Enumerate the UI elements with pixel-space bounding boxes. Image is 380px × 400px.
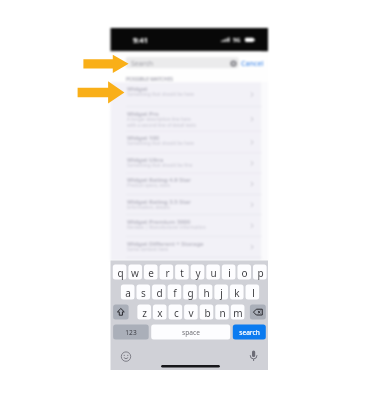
staticText: b bbox=[204, 306, 211, 320]
button[interactable]: a bbox=[121, 285, 135, 300]
staticText: m bbox=[233, 306, 243, 320]
staticText: w bbox=[131, 266, 139, 280]
staticText: d bbox=[156, 286, 163, 300]
button[interactable]: w bbox=[128, 265, 142, 280]
staticText: Cancel bbox=[241, 58, 264, 68]
staticText: k bbox=[234, 286, 240, 300]
staticText: 5G bbox=[233, 36, 241, 44]
staticText: r bbox=[165, 266, 170, 280]
button[interactable]: v bbox=[184, 305, 198, 320]
staticText: o bbox=[241, 266, 248, 280]
button[interactable]: i bbox=[222, 265, 236, 280]
button[interactable]: Widget Rating 3.5 Star bbox=[111, 195, 262, 215]
staticText: Search bbox=[131, 59, 154, 68]
button[interactable]: Widget Different + Storage bbox=[111, 237, 262, 258]
button[interactable]: space bbox=[151, 325, 230, 340]
staticText: Reviews | Manufacturer information bbox=[127, 224, 206, 230]
staticText: Something that should be here bbox=[127, 91, 194, 97]
staticText: n bbox=[219, 306, 226, 320]
button[interactable]: x bbox=[153, 305, 167, 320]
staticText: f bbox=[173, 286, 177, 300]
staticText: h bbox=[203, 286, 210, 300]
button[interactable]: Widget Rating 4.9 Star bbox=[111, 173, 262, 194]
button[interactable]: j bbox=[214, 285, 228, 300]
button[interactable]: Widget Ultra bbox=[111, 153, 262, 173]
staticText: i bbox=[228, 266, 231, 280]
staticText: Widget Pro bbox=[127, 110, 159, 118]
staticText: Widget 100 bbox=[127, 134, 160, 142]
button[interactable]: Search bbox=[126, 57, 239, 68]
staticText: u bbox=[210, 266, 217, 280]
staticText: a bbox=[125, 286, 131, 300]
staticText: Something that should be fine bbox=[127, 162, 193, 168]
button[interactable]: k bbox=[230, 285, 244, 300]
button[interactable]: search bbox=[233, 325, 266, 340]
staticText: space bbox=[182, 328, 200, 337]
staticText: Widget Rating 3.5 Star bbox=[127, 198, 191, 206]
button[interactable]: u bbox=[206, 265, 220, 280]
button[interactable]: q bbox=[113, 265, 127, 280]
button[interactable]: z bbox=[137, 305, 151, 320]
button[interactable]: n bbox=[215, 305, 229, 320]
button[interactable]: 123 bbox=[113, 325, 149, 340]
staticText: 9:41 bbox=[133, 35, 149, 45]
button[interactable]: f bbox=[168, 285, 182, 300]
staticText: j bbox=[220, 286, 223, 300]
button[interactable]: d bbox=[152, 285, 166, 300]
staticText: POSSIBLE MATCHES bbox=[126, 76, 173, 83]
staticText: A longer description line here bbox=[127, 116, 191, 122]
button[interactable]: s bbox=[136, 285, 150, 300]
staticText: l bbox=[252, 286, 255, 300]
staticText: e bbox=[148, 266, 154, 280]
button[interactable]: c bbox=[169, 305, 183, 320]
staticText: Widget Ultra bbox=[127, 156, 164, 164]
button[interactable]: Widget 100 bbox=[111, 131, 262, 153]
button[interactable]: g bbox=[183, 285, 197, 300]
button[interactable]: Widget bbox=[111, 82, 262, 107]
staticText: search bbox=[239, 328, 260, 337]
button[interactable]: o bbox=[237, 265, 251, 280]
staticText: Something that should be here bbox=[127, 140, 194, 146]
staticText: g bbox=[187, 286, 194, 300]
staticText: Widget Different + Storage bbox=[127, 240, 204, 248]
staticText: Widget bbox=[127, 85, 148, 93]
button[interactable]: r bbox=[160, 265, 174, 280]
staticText: x bbox=[157, 306, 163, 320]
staticText: c bbox=[174, 306, 179, 320]
staticText: 123 bbox=[125, 328, 137, 337]
button[interactable]: p bbox=[253, 265, 267, 280]
staticText: with a second line of detail texts bbox=[127, 122, 197, 128]
staticText: p bbox=[257, 266, 264, 280]
button[interactable]: Widget Premium 3000 bbox=[111, 215, 262, 237]
staticText: t bbox=[180, 266, 184, 280]
button[interactable]: e bbox=[144, 265, 158, 280]
button[interactable]: l bbox=[246, 285, 260, 300]
button[interactable]: t bbox=[175, 265, 189, 280]
button[interactable]: y bbox=[191, 265, 205, 280]
staticText: z bbox=[142, 306, 147, 320]
button[interactable]: h bbox=[199, 285, 213, 300]
staticText: s bbox=[141, 286, 146, 300]
staticText: Information, details bbox=[127, 204, 170, 210]
button[interactable]: Cancel bbox=[241, 57, 267, 68]
staticText: v bbox=[188, 306, 194, 320]
staticText: Widget Rating 4.9 Star bbox=[127, 176, 191, 184]
button[interactable]: Widget Pro bbox=[111, 107, 262, 132]
staticText: y bbox=[195, 266, 201, 280]
staticText: Widget Premium 3000 bbox=[127, 218, 191, 226]
staticText: Product specs, sizes bbox=[127, 182, 170, 188]
staticText: Some content here bbox=[127, 246, 168, 252]
button[interactable]: m bbox=[231, 305, 245, 320]
staticText: q bbox=[117, 266, 124, 280]
button[interactable]: b bbox=[200, 305, 214, 320]
